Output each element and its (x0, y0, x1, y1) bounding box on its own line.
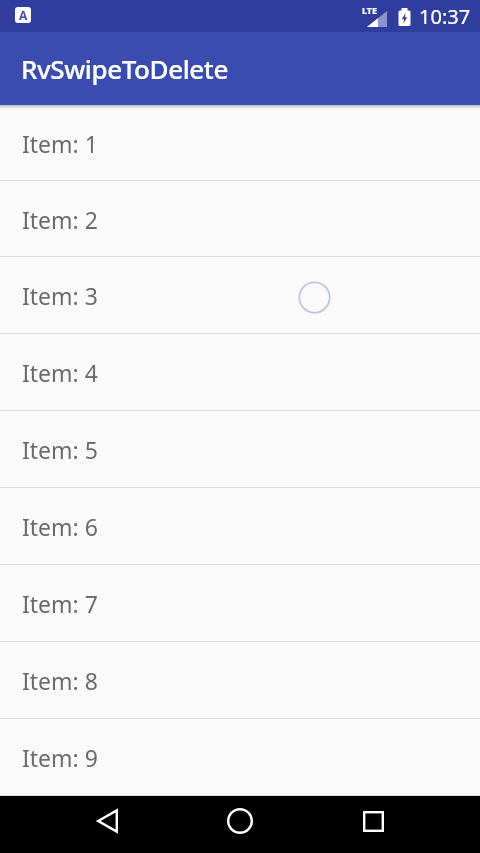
staticText: Item: 3 (22, 280, 98, 311)
staticText: Item: 6 (22, 511, 98, 542)
staticText: Item: 7 (22, 588, 98, 619)
staticText: Item: 8 (22, 665, 98, 696)
staticText: LTE (362, 4, 378, 16)
staticText: Item: 5 (22, 434, 98, 465)
button[interactable]: Item: 3 (0, 257, 480, 334)
staticText: Item: 1 (22, 128, 98, 159)
button[interactable]: Item: 4 (0, 334, 480, 411)
staticText: Item: 2 (22, 204, 98, 235)
staticText: A (19, 7, 28, 23)
button[interactable]: Item: 5 (0, 411, 480, 488)
button[interactable]: Item: 1 (0, 105, 480, 181)
button[interactable] (333, 796, 413, 846)
button[interactable] (67, 796, 147, 846)
staticText: Item: 4 (22, 357, 98, 388)
button[interactable]: Item: 9 (0, 719, 480, 796)
button[interactable]: Item: 6 (0, 488, 480, 565)
button[interactable]: Item: 2 (0, 181, 480, 257)
staticText: RvSwipeToDelete (21, 51, 228, 86)
button[interactable] (200, 796, 280, 846)
button[interactable]: Item: 8 (0, 642, 480, 719)
staticText: Item: 9 (22, 742, 98, 773)
button[interactable]: Item: 7 (0, 565, 480, 642)
staticText: 10:37 (419, 3, 471, 30)
